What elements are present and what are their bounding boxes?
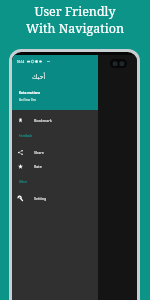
button[interactable]: Setting bbox=[12, 191, 98, 205]
staticText: Feedback bbox=[19, 134, 33, 138]
button[interactable]: Share bbox=[12, 145, 98, 159]
staticText: Ani Saw Dev bbox=[19, 98, 37, 102]
button[interactable]: Rate bbox=[12, 159, 98, 173]
other: Front camera bbox=[110, 59, 127, 68]
staticText: Setting bbox=[34, 196, 47, 201]
staticText: Share bbox=[34, 150, 44, 155]
staticText: Other bbox=[19, 180, 28, 184]
staticText: Rate bbox=[34, 164, 42, 169]
staticText: Kata mutiara bbox=[19, 91, 40, 95]
staticText: أحبك bbox=[32, 73, 46, 81]
staticText: 16:14 bbox=[17, 60, 25, 64]
staticText: With Navigation bbox=[26, 20, 124, 37]
button[interactable]: Bookmark bbox=[12, 113, 98, 127]
staticText: Bookmark bbox=[34, 118, 52, 123]
staticText: User Friendly bbox=[34, 3, 116, 20]
